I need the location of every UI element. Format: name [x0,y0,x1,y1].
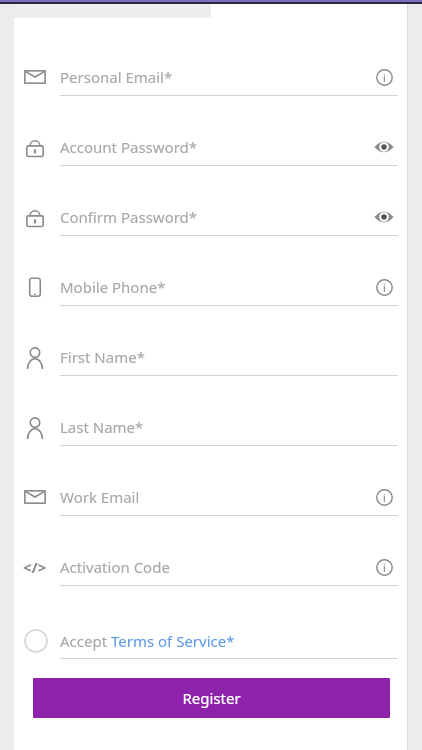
staticText: Activation Code [60,557,170,577]
button[interactable]: Account Password* [60,128,398,166]
button[interactable]: Personal Email* [60,58,398,96]
button[interactable]: Show password [372,135,396,159]
button[interactable]: Register [33,678,390,718]
staticText: Confirm Password* [60,207,198,227]
staticText: </> [23,557,47,577]
staticText: Mobile Phone* [60,277,166,297]
staticText: i [383,281,386,295]
button[interactable]: Last Name* [60,408,398,446]
button[interactable]: Confirm Password* [60,198,398,236]
button[interactable]: Mobile Phone* [60,268,398,306]
button[interactable]: Show password [372,205,396,229]
staticText: Accept Terms of Service* [60,631,235,651]
staticText: First Name* [60,347,145,367]
staticText: i [383,561,386,575]
staticText: i [383,491,386,505]
button[interactable]: More information about Work Email [372,485,396,509]
staticText: Account Password* [60,137,198,157]
staticText: Register [182,688,241,708]
button[interactable]: More information about Activation Code [372,555,396,579]
button[interactable]: More information about Mobile Phone* [372,275,396,299]
button[interactable]: Work Email [60,478,398,516]
button[interactable]: Accept Terms of Service* [24,624,398,658]
staticText: Personal Email* [60,67,173,87]
staticText: i [383,71,386,85]
staticText: Last Name* [60,417,144,437]
button[interactable]: More information about Personal Email* [372,65,396,89]
staticText: Work Email [60,487,140,507]
button[interactable]: Activation Code [60,548,398,586]
button[interactable]: First Name* [60,338,398,376]
